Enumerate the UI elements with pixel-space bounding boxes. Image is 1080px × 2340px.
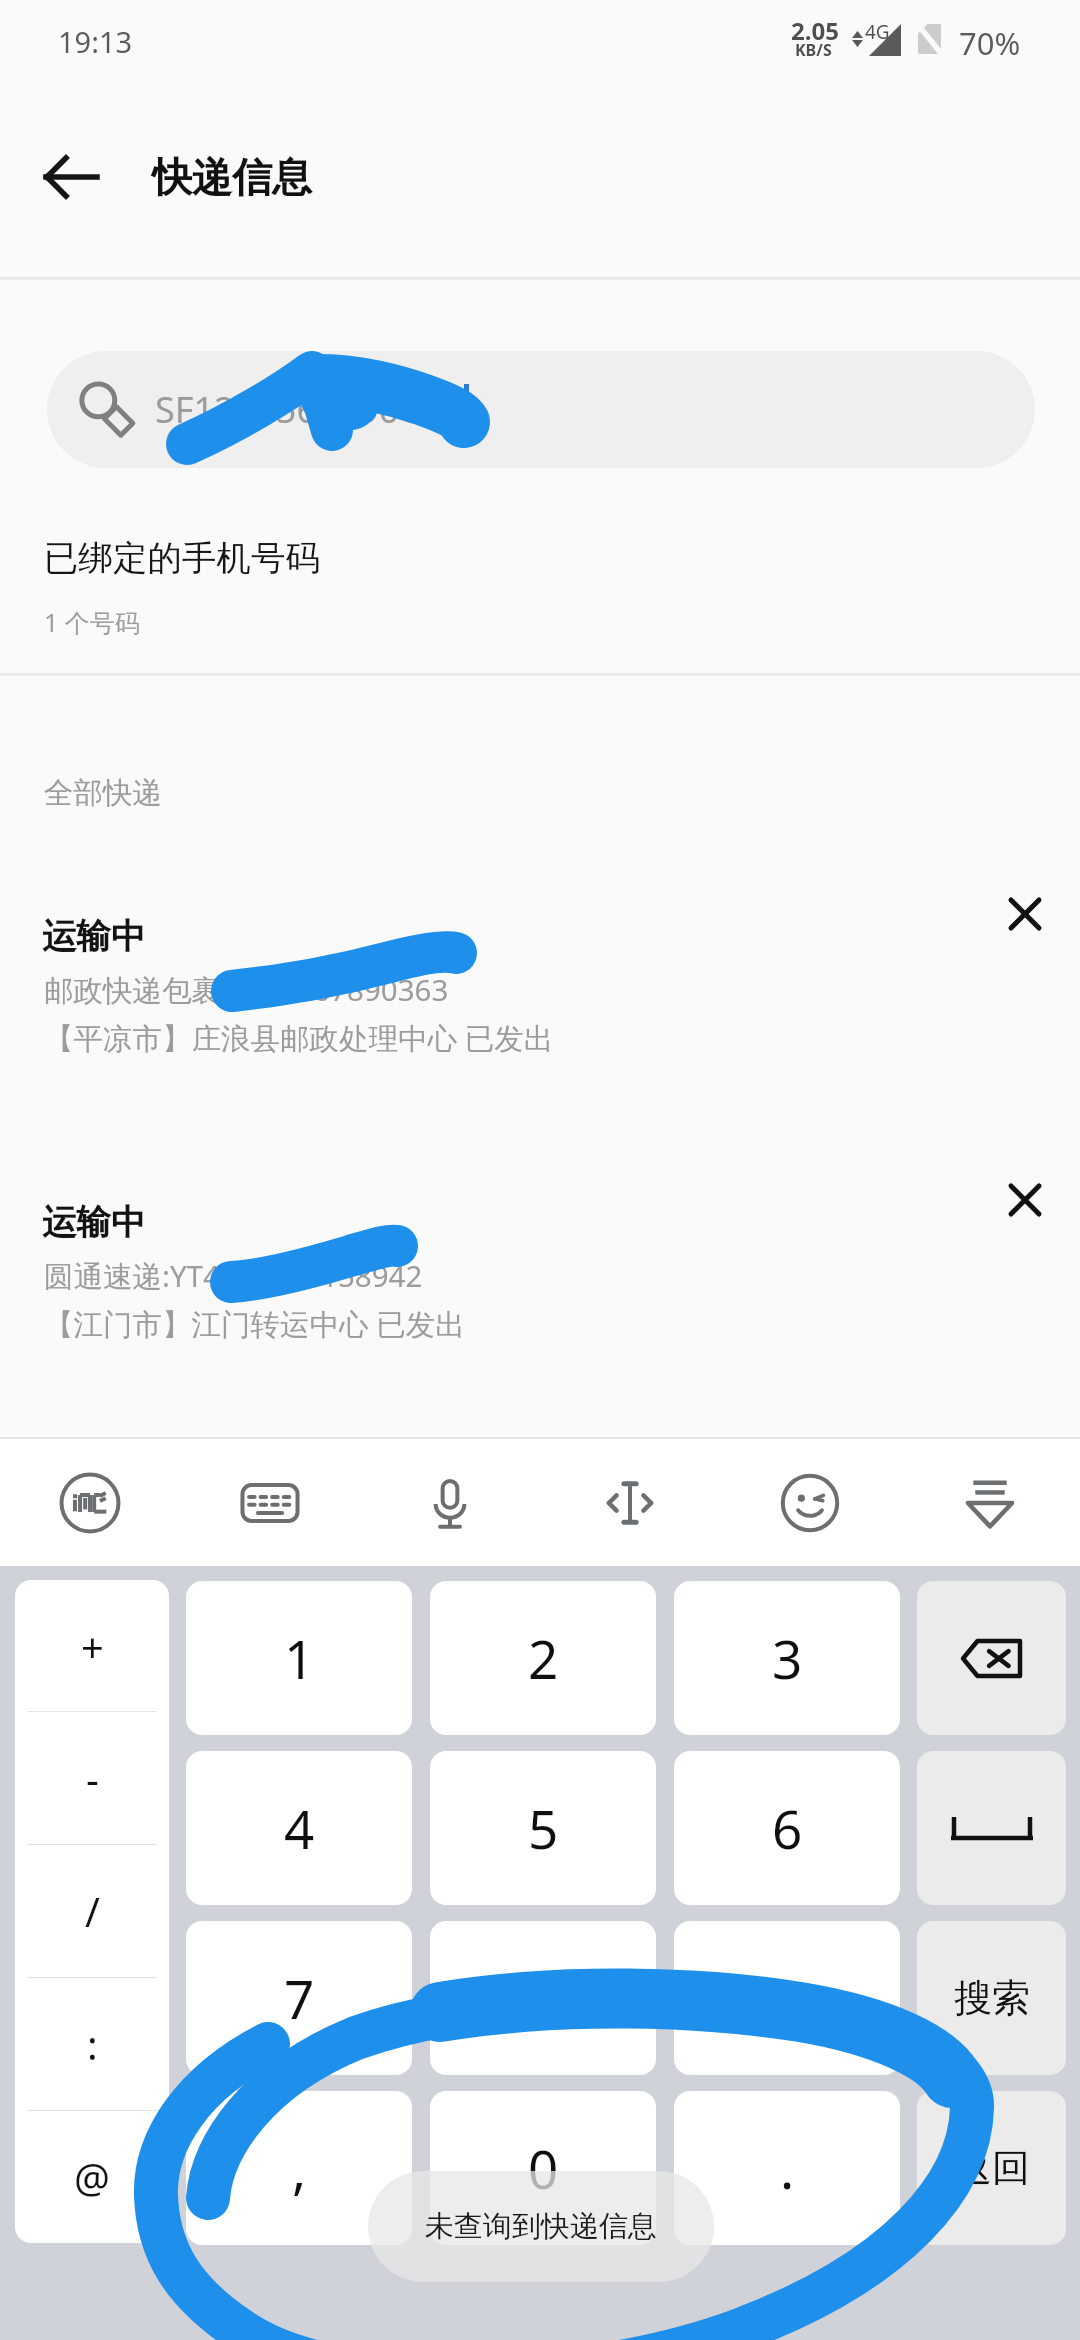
- button[interactable]: ,: [186, 2091, 412, 2245]
- staticText: 未查询到快递信息: [425, 2208, 657, 2245]
- staticText: ,: [292, 2132, 307, 2204]
- staticText: SF1234567890123: [155, 385, 462, 434]
- staticText: 1: [284, 1622, 315, 1694]
- staticText: 9: [772, 1962, 803, 2034]
- button[interactable]: Remove: [993, 882, 1057, 946]
- button[interactable]: :: [15, 1978, 169, 2110]
- staticText: 3: [772, 1622, 803, 1694]
- button[interactable]: 6: [674, 1751, 900, 1905]
- button[interactable]: Emoji: [720, 1439, 900, 1566]
- button[interactable]: Move cursor: [540, 1439, 720, 1566]
- staticText: 4G: [865, 19, 890, 45]
- button[interactable]: /: [15, 1845, 169, 1977]
- staticText: +: [81, 1619, 104, 1673]
- button[interactable]: SF1234567890123: [47, 351, 1035, 468]
- staticText: 2.05: [791, 14, 839, 47]
- staticText: 4: [284, 1792, 315, 1864]
- staticText: 19:13: [58, 22, 133, 61]
- staticText: @: [74, 2150, 110, 2204]
- button[interactable]: 运输中: [0, 915, 1080, 1085]
- staticText: .: [780, 2132, 795, 2204]
- staticText: 1 个号码: [44, 605, 140, 639]
- button[interactable]: 2: [430, 1581, 656, 1735]
- staticText: 返回: [954, 2144, 1030, 2192]
- staticText: 全部快递: [44, 775, 162, 812]
- staticText: 70%: [959, 22, 1021, 64]
- button[interactable]: 7: [186, 1921, 412, 2075]
- staticText: 已绑定的手机号码: [44, 537, 320, 580]
- button[interactable]: 1: [186, 1581, 412, 1735]
- staticText: 8: [528, 1962, 559, 2034]
- button[interactable]: Voice input: [360, 1439, 540, 1566]
- staticText: 7: [284, 1962, 315, 2034]
- staticText: -: [86, 1751, 99, 1805]
- button[interactable]: .: [674, 2091, 900, 2245]
- button[interactable]: -: [15, 1712, 169, 1844]
- button[interactable]: Backspace: [917, 1581, 1066, 1735]
- button[interactable]: 9: [674, 1921, 900, 2075]
- button[interactable]: Space: [917, 1751, 1066, 1905]
- button[interactable]: @: [15, 2111, 169, 2243]
- staticText: 【平凉市】庄浪县邮政处理中心 已发出: [44, 1017, 554, 1057]
- button[interactable]: Remove: [993, 1168, 1057, 1232]
- staticText: 快递信息: [152, 152, 312, 202]
- button[interactable]: +: [15, 1580, 169, 1711]
- staticText: 运输中: [42, 915, 146, 958]
- button[interactable]: 0: [430, 2091, 656, 2245]
- staticText: 【江门市】江门转运中心 已发出: [44, 1303, 465, 1343]
- button[interactable]: 运输中: [0, 1201, 1080, 1371]
- button[interactable]: 3: [674, 1581, 900, 1735]
- staticText: 0: [528, 2132, 559, 2204]
- staticText: 搜索: [954, 1974, 1030, 2022]
- button[interactable]: 返回: [917, 2091, 1066, 2245]
- staticText: 圆通速递:YT4567890158942: [44, 1255, 423, 1295]
- staticText: :: [87, 2017, 98, 2071]
- staticText: 5: [528, 1792, 559, 1864]
- button[interactable]: 5: [430, 1751, 656, 1905]
- staticText: 2: [528, 1622, 559, 1694]
- button[interactable]: 8: [430, 1921, 656, 2075]
- button[interactable]: Hide keyboard: [900, 1439, 1080, 1566]
- button[interactable]: Input method: [0, 1439, 180, 1566]
- staticText: 运输中: [42, 1201, 146, 1244]
- button[interactable]: 4: [186, 1751, 412, 1905]
- staticText: 6: [772, 1792, 803, 1864]
- button[interactable]: Back: [26, 137, 116, 217]
- button[interactable]: 搜索: [917, 1921, 1066, 2075]
- staticText: /: [85, 1884, 100, 1938]
- staticText: 邮政快递包裹:1234567890363: [44, 969, 449, 1009]
- button[interactable]: Keyboard layout: [180, 1439, 360, 1566]
- staticText: KB/S: [795, 39, 832, 61]
